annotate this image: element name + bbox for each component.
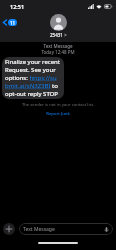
- button[interactable]: Back: [1, 17, 19, 28]
- staticText: Report Junk: [46, 111, 70, 117]
- staticText: 25431: [50, 32, 63, 38]
- staticText: Today 12:48 PM: [0, 49, 116, 55]
- staticText: The sender is not in your contact list.: [0, 102, 116, 108]
- button[interactable]: Finalize your recent Request. See your o…: [2, 57, 64, 99]
- button[interactable]: Text Message: [19, 223, 113, 235]
- staticText: Text Message: [0, 43, 116, 49]
- button[interactable]: Report Junk: [44, 110, 72, 118]
- staticText: Text Message: [23, 226, 55, 233]
- button[interactable]: Add attachment: [3, 223, 15, 235]
- button[interactable]: Audio message: [102, 225, 111, 234]
- staticText: 11: [10, 20, 16, 26]
- staticText: Finalize your recent Request. See your o…: [5, 58, 60, 98]
- staticText: 12:51: [10, 3, 25, 10]
- button[interactable]: 25431: [50, 14, 67, 38]
